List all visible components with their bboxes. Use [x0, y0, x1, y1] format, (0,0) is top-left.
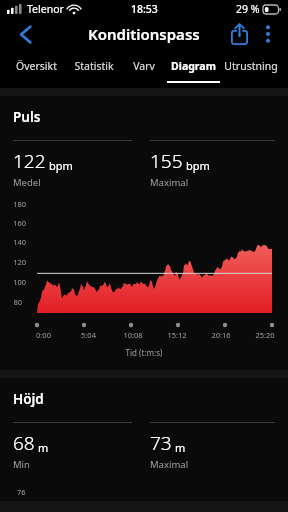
staticText: 140	[13, 237, 26, 247]
button[interactable]: Varv	[123, 50, 164, 81]
button[interactable]: Diagram	[164, 50, 222, 83]
staticText: 122	[13, 148, 46, 174]
staticText: 0:00	[36, 330, 51, 340]
staticText: bpm	[49, 158, 73, 173]
staticText: 5:04	[81, 330, 96, 340]
staticText: Medel	[13, 176, 41, 189]
staticText: 80	[13, 297, 22, 307]
staticText: 15:12	[167, 330, 187, 340]
staticText: Varv	[133, 59, 155, 73]
staticText: Diagram	[171, 59, 216, 73]
staticText: 155	[150, 148, 183, 174]
staticText: 20:16	[211, 330, 231, 340]
button[interactable]: Översikt	[8, 50, 65, 81]
staticText: 68	[13, 430, 35, 456]
staticText: 18:53	[131, 2, 158, 16]
staticText: Maximal	[150, 458, 189, 471]
staticText: 76	[17, 487, 26, 497]
staticText: m	[175, 440, 186, 455]
staticText: 120	[13, 257, 26, 267]
staticText: Statistik	[74, 59, 114, 73]
staticText: Telenor	[27, 2, 64, 16]
staticText: bpm	[186, 158, 210, 173]
staticText: Översikt	[16, 59, 57, 73]
staticText: 25:20	[255, 330, 275, 340]
staticText: Utrustning	[224, 59, 278, 73]
staticText: 10:08	[123, 330, 143, 340]
button[interactable]: More options	[256, 22, 280, 46]
button[interactable]: Share	[225, 20, 253, 48]
staticText: 180	[13, 199, 26, 209]
button[interactable]: Back	[10, 19, 40, 49]
staticText: 100	[13, 277, 26, 287]
staticText: Konditionspass	[88, 24, 200, 44]
staticText: Min	[13, 458, 30, 471]
button[interactable]: Utrustning	[222, 50, 280, 81]
staticText: 73	[150, 430, 172, 456]
button[interactable]: Statistik	[65, 50, 123, 81]
staticText: m	[38, 440, 49, 455]
staticText: 160	[13, 218, 26, 228]
staticText: Höjd	[13, 390, 44, 408]
staticText: Puls	[13, 108, 41, 126]
staticText: Maximal	[150, 176, 189, 189]
staticText: 29 %	[236, 2, 260, 16]
staticText: Tid (t:m:s)	[0, 347, 288, 358]
